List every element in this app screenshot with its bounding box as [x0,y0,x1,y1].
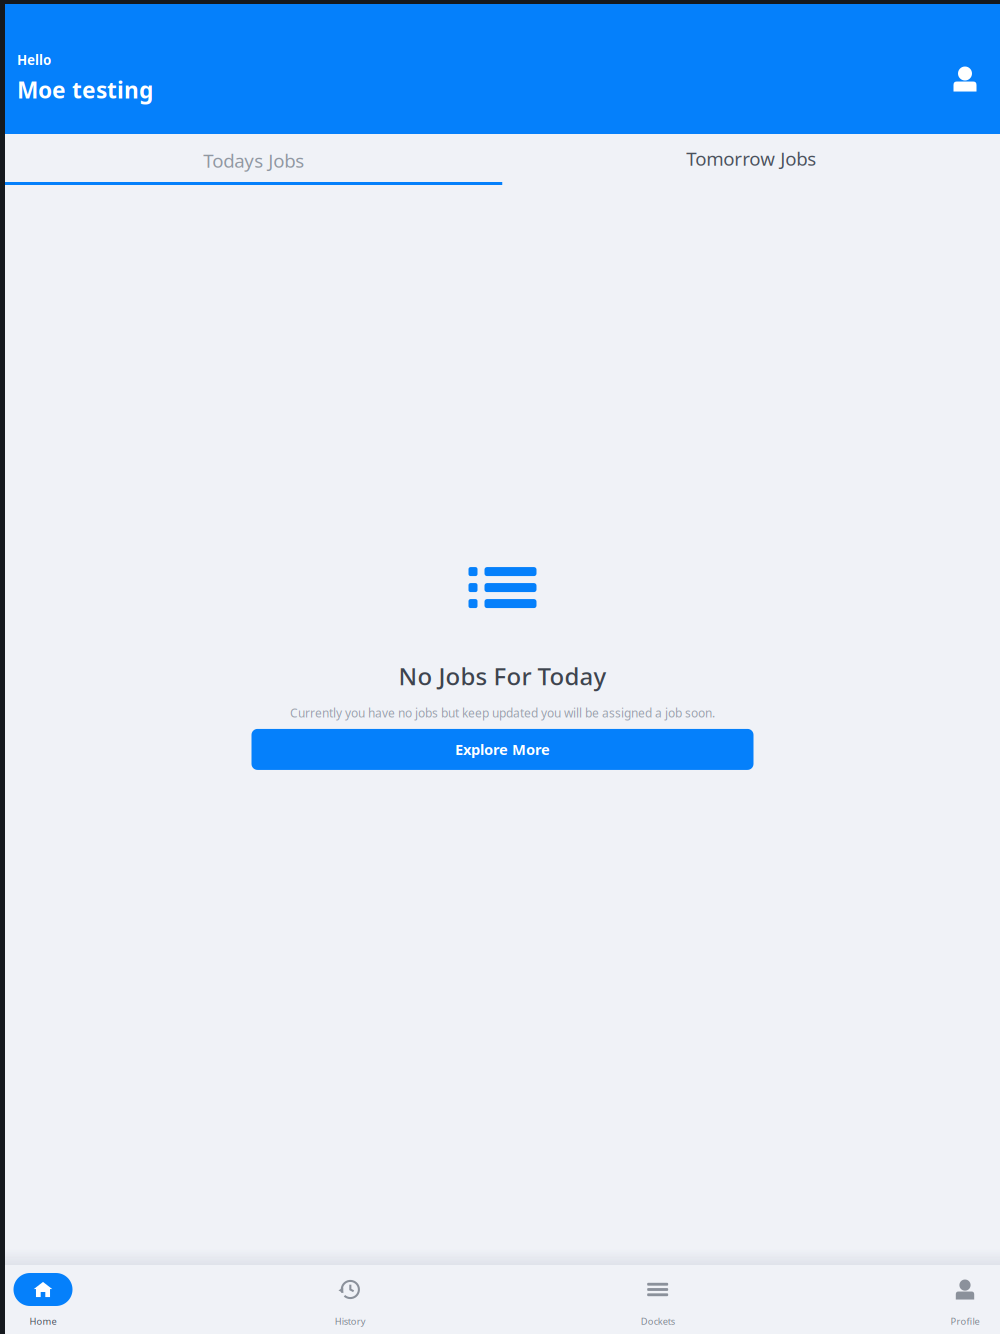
staticText: Explore More [455,740,550,759]
staticText: Home [29,1315,56,1327]
staticText: Moe testing [17,75,153,105]
button[interactable]: Home [0,1273,88,1327]
staticText: Tomorrow Jobs [686,146,816,171]
staticText: Hello [17,51,51,69]
staticText: Profile [950,1315,979,1327]
button[interactable]: Profile [920,1273,1000,1327]
button[interactable]: Todays Jobs [5,134,502,185]
staticText: Todays Jobs [203,148,304,173]
button[interactable]: History [305,1273,395,1327]
button[interactable]: Explore More [251,729,753,770]
button[interactable]: Account [943,57,987,101]
button[interactable]: Tomorrow Jobs [502,134,1000,185]
staticText: Dockets [641,1315,675,1327]
staticText: No Jobs For Today [398,660,606,692]
button[interactable]: Dockets [613,1273,703,1327]
staticText: Currently you have no jobs but keep upda… [290,705,715,721]
staticText: History [335,1315,366,1327]
